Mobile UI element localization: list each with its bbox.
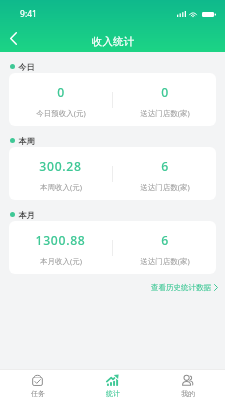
button[interactable]: 查看历史统计数据 xyxy=(149,281,220,294)
staticText: 送达门店数(家) xyxy=(140,182,190,192)
staticText: 今日预收入(元) xyxy=(36,108,86,118)
button[interactable]: 统计 xyxy=(75,369,150,400)
staticText: 本月收入(元) xyxy=(40,256,82,266)
staticText: 送达门店数(家) xyxy=(140,256,190,266)
staticText: 本周收入(元) xyxy=(40,182,82,192)
staticText: 6 xyxy=(161,158,169,175)
button[interactable]: 1300.88 xyxy=(9,221,216,274)
button[interactable]: 我的 xyxy=(150,369,225,400)
staticText: 查看历史统计数据 xyxy=(151,283,211,292)
staticText: 统计 xyxy=(106,389,120,398)
staticText: 本周 xyxy=(18,136,35,145)
staticText: 送达门店数(家) xyxy=(140,108,190,118)
staticText: 0 xyxy=(57,84,65,101)
staticText: 0 xyxy=(161,84,169,101)
button[interactable]: 任务 xyxy=(0,369,75,400)
button[interactable]: 300.28 xyxy=(9,147,216,200)
staticText: 我的 xyxy=(181,389,195,398)
staticText: 本月 xyxy=(18,210,35,219)
staticText: 任务 xyxy=(31,389,45,398)
staticText: 1300.88 xyxy=(35,232,86,249)
staticText: 收入统计 xyxy=(92,35,134,48)
staticText: 9:41 xyxy=(20,8,37,20)
staticText: 今日 xyxy=(18,62,35,71)
button[interactable]: Back xyxy=(2,27,25,50)
staticText: 300.28 xyxy=(39,158,82,175)
button[interactable]: 0 xyxy=(9,73,216,126)
staticText: 6 xyxy=(161,232,169,249)
